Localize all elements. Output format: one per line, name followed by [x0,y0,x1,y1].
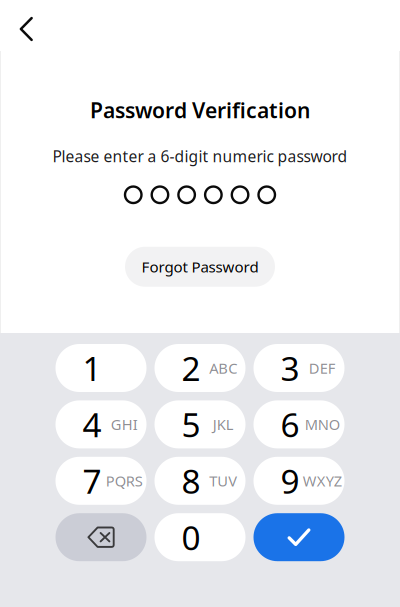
staticText: ABC [209,358,237,378]
button[interactable]: 6 [253,400,344,448]
button[interactable]: 1 [55,344,146,392]
staticText: TUV [209,471,237,491]
button[interactable]: 9 [253,457,344,505]
staticText: 0 [181,514,200,560]
button[interactable]: 4 [55,400,146,448]
button[interactable]: 7 [55,457,146,505]
button[interactable]: Forgot Password [125,247,275,287]
staticText: Forgot Password [141,256,258,277]
button[interactable]: 2 [154,344,245,392]
staticText: 7 [82,458,101,503]
staticText: 9 [280,458,299,503]
staticText: 2 [181,345,200,391]
button[interactable]: 3 [253,344,344,392]
staticText: JKL [213,414,234,434]
staticText: MNO [305,414,340,434]
staticText: Password Verification [90,96,310,124]
staticText: DEF [309,358,336,378]
staticText: 1 [82,345,101,391]
staticText: 8 [181,458,200,503]
button[interactable]: Back [20,6,60,52]
button[interactable]: 8 [154,457,245,505]
staticText: GHI [111,414,138,434]
button[interactable]: Delete [55,513,146,561]
staticText: 3 [280,345,299,391]
staticText: 4 [82,402,101,447]
staticText: Please enter a 6-digit numeric password [52,146,347,167]
staticText: PQRS [106,471,143,491]
staticText: 6 [280,402,299,447]
staticText: 5 [181,402,200,447]
button[interactable]: 5 [154,400,245,448]
button[interactable]: 0 [154,513,245,561]
staticText: WXYZ [303,471,342,491]
button[interactable]: Confirm [253,513,344,561]
